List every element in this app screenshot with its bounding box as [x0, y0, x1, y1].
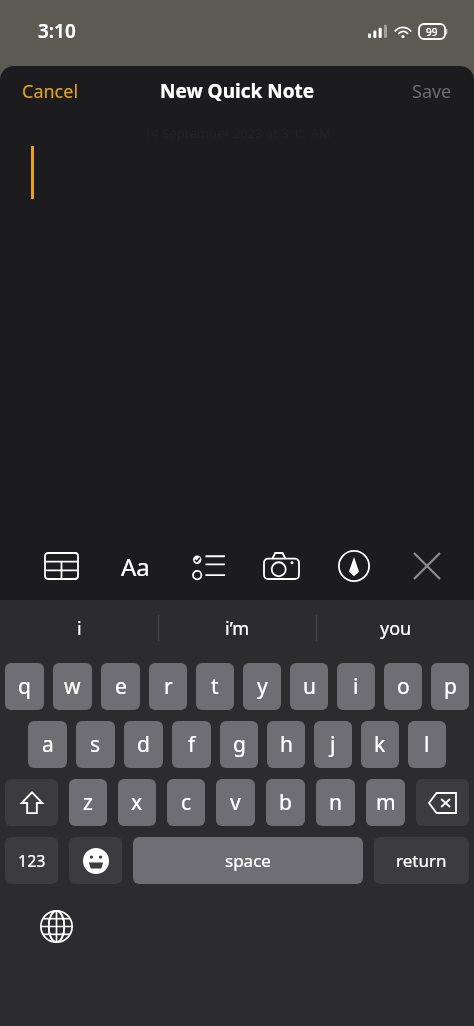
button[interactable]: z [69, 779, 107, 826]
staticText: Save [412, 79, 452, 104]
button[interactable]: space [133, 837, 363, 884]
button[interactable]: c [167, 779, 205, 826]
staticText: j [330, 730, 336, 759]
button[interactable]: y [243, 663, 281, 710]
staticText: k [374, 730, 386, 759]
staticText: e [115, 672, 127, 701]
staticText: l [424, 730, 430, 759]
button[interactable]: 123 [5, 837, 58, 884]
button[interactable]: u [290, 663, 328, 710]
staticText: r [164, 672, 173, 701]
staticText: space [225, 849, 271, 872]
staticText: New Quick Note [160, 78, 315, 104]
staticText: return [396, 849, 447, 872]
staticText: u [303, 672, 316, 701]
staticText: i [353, 672, 359, 701]
staticText: w [64, 672, 81, 701]
button[interactable]: l [408, 721, 446, 768]
button[interactable]: q [5, 663, 44, 710]
staticText: 123 [18, 850, 46, 872]
button[interactable]: return [374, 837, 469, 884]
button[interactable]: Cancel [0, 71, 101, 112]
button[interactable]: Text format [114, 545, 156, 587]
button[interactable]: o [384, 663, 422, 710]
button[interactable]: i [337, 663, 375, 710]
button[interactable]: a [28, 721, 67, 768]
staticText: i [77, 616, 82, 641]
button[interactable]: r [149, 663, 187, 710]
button[interactable]: n [316, 779, 355, 826]
staticText: f [188, 730, 196, 759]
button[interactable]: you [317, 600, 474, 656]
staticText: o [397, 672, 410, 701]
button[interactable]: j [314, 721, 352, 768]
staticText: x [131, 788, 143, 817]
staticText: s [90, 730, 101, 759]
staticText: a [42, 730, 54, 759]
staticText: c [181, 788, 192, 817]
staticText: q [18, 672, 31, 701]
button[interactable]: i’m [159, 600, 316, 656]
staticText: d [137, 730, 150, 759]
staticText: 3:10 [38, 18, 76, 44]
button[interactable]: m [366, 779, 405, 826]
staticText: Cancel [22, 79, 79, 104]
staticText: b [279, 788, 292, 817]
button[interactable]: e [101, 663, 140, 710]
staticText: Aa [121, 550, 150, 583]
button[interactable]: t [196, 663, 234, 710]
button[interactable]: g [220, 721, 258, 768]
staticText: g [233, 730, 246, 759]
button[interactable]: w [53, 663, 92, 710]
staticText: n [329, 788, 342, 817]
button[interactable]: Camera [260, 545, 302, 587]
button[interactable]: v [216, 779, 255, 826]
staticText: y [257, 672, 268, 701]
button[interactable]: d [124, 721, 163, 768]
button[interactable]: Save [390, 71, 474, 112]
staticText: p [444, 672, 457, 701]
button[interactable]: Checklist [187, 545, 229, 587]
button[interactable]: Markup [333, 545, 375, 587]
button[interactable]: p [431, 663, 469, 710]
button[interactable]: s [76, 721, 115, 768]
button[interactable]: k [361, 721, 399, 768]
staticText: you [380, 616, 412, 641]
button[interactable]: Insert table [40, 545, 82, 587]
staticText: i’m [225, 616, 250, 641]
staticText: 99 [426, 25, 438, 39]
button[interactable]: Emoji [69, 837, 122, 884]
staticText: v [230, 788, 241, 817]
button[interactable]: x [118, 779, 156, 826]
button[interactable]: Switch keyboard [36, 906, 76, 946]
staticText: z [83, 788, 93, 817]
button[interactable]: i [0, 600, 158, 656]
button[interactable]: b [266, 779, 305, 826]
staticText: h [280, 730, 293, 759]
button[interactable]: f [172, 721, 211, 768]
staticText: m [376, 788, 396, 817]
button[interactable]: h [267, 721, 305, 768]
staticText: t [211, 672, 219, 701]
button[interactable]: Close [406, 545, 448, 587]
button[interactable]: Backspace [416, 779, 469, 826]
button[interactable]: Shift [5, 779, 58, 826]
